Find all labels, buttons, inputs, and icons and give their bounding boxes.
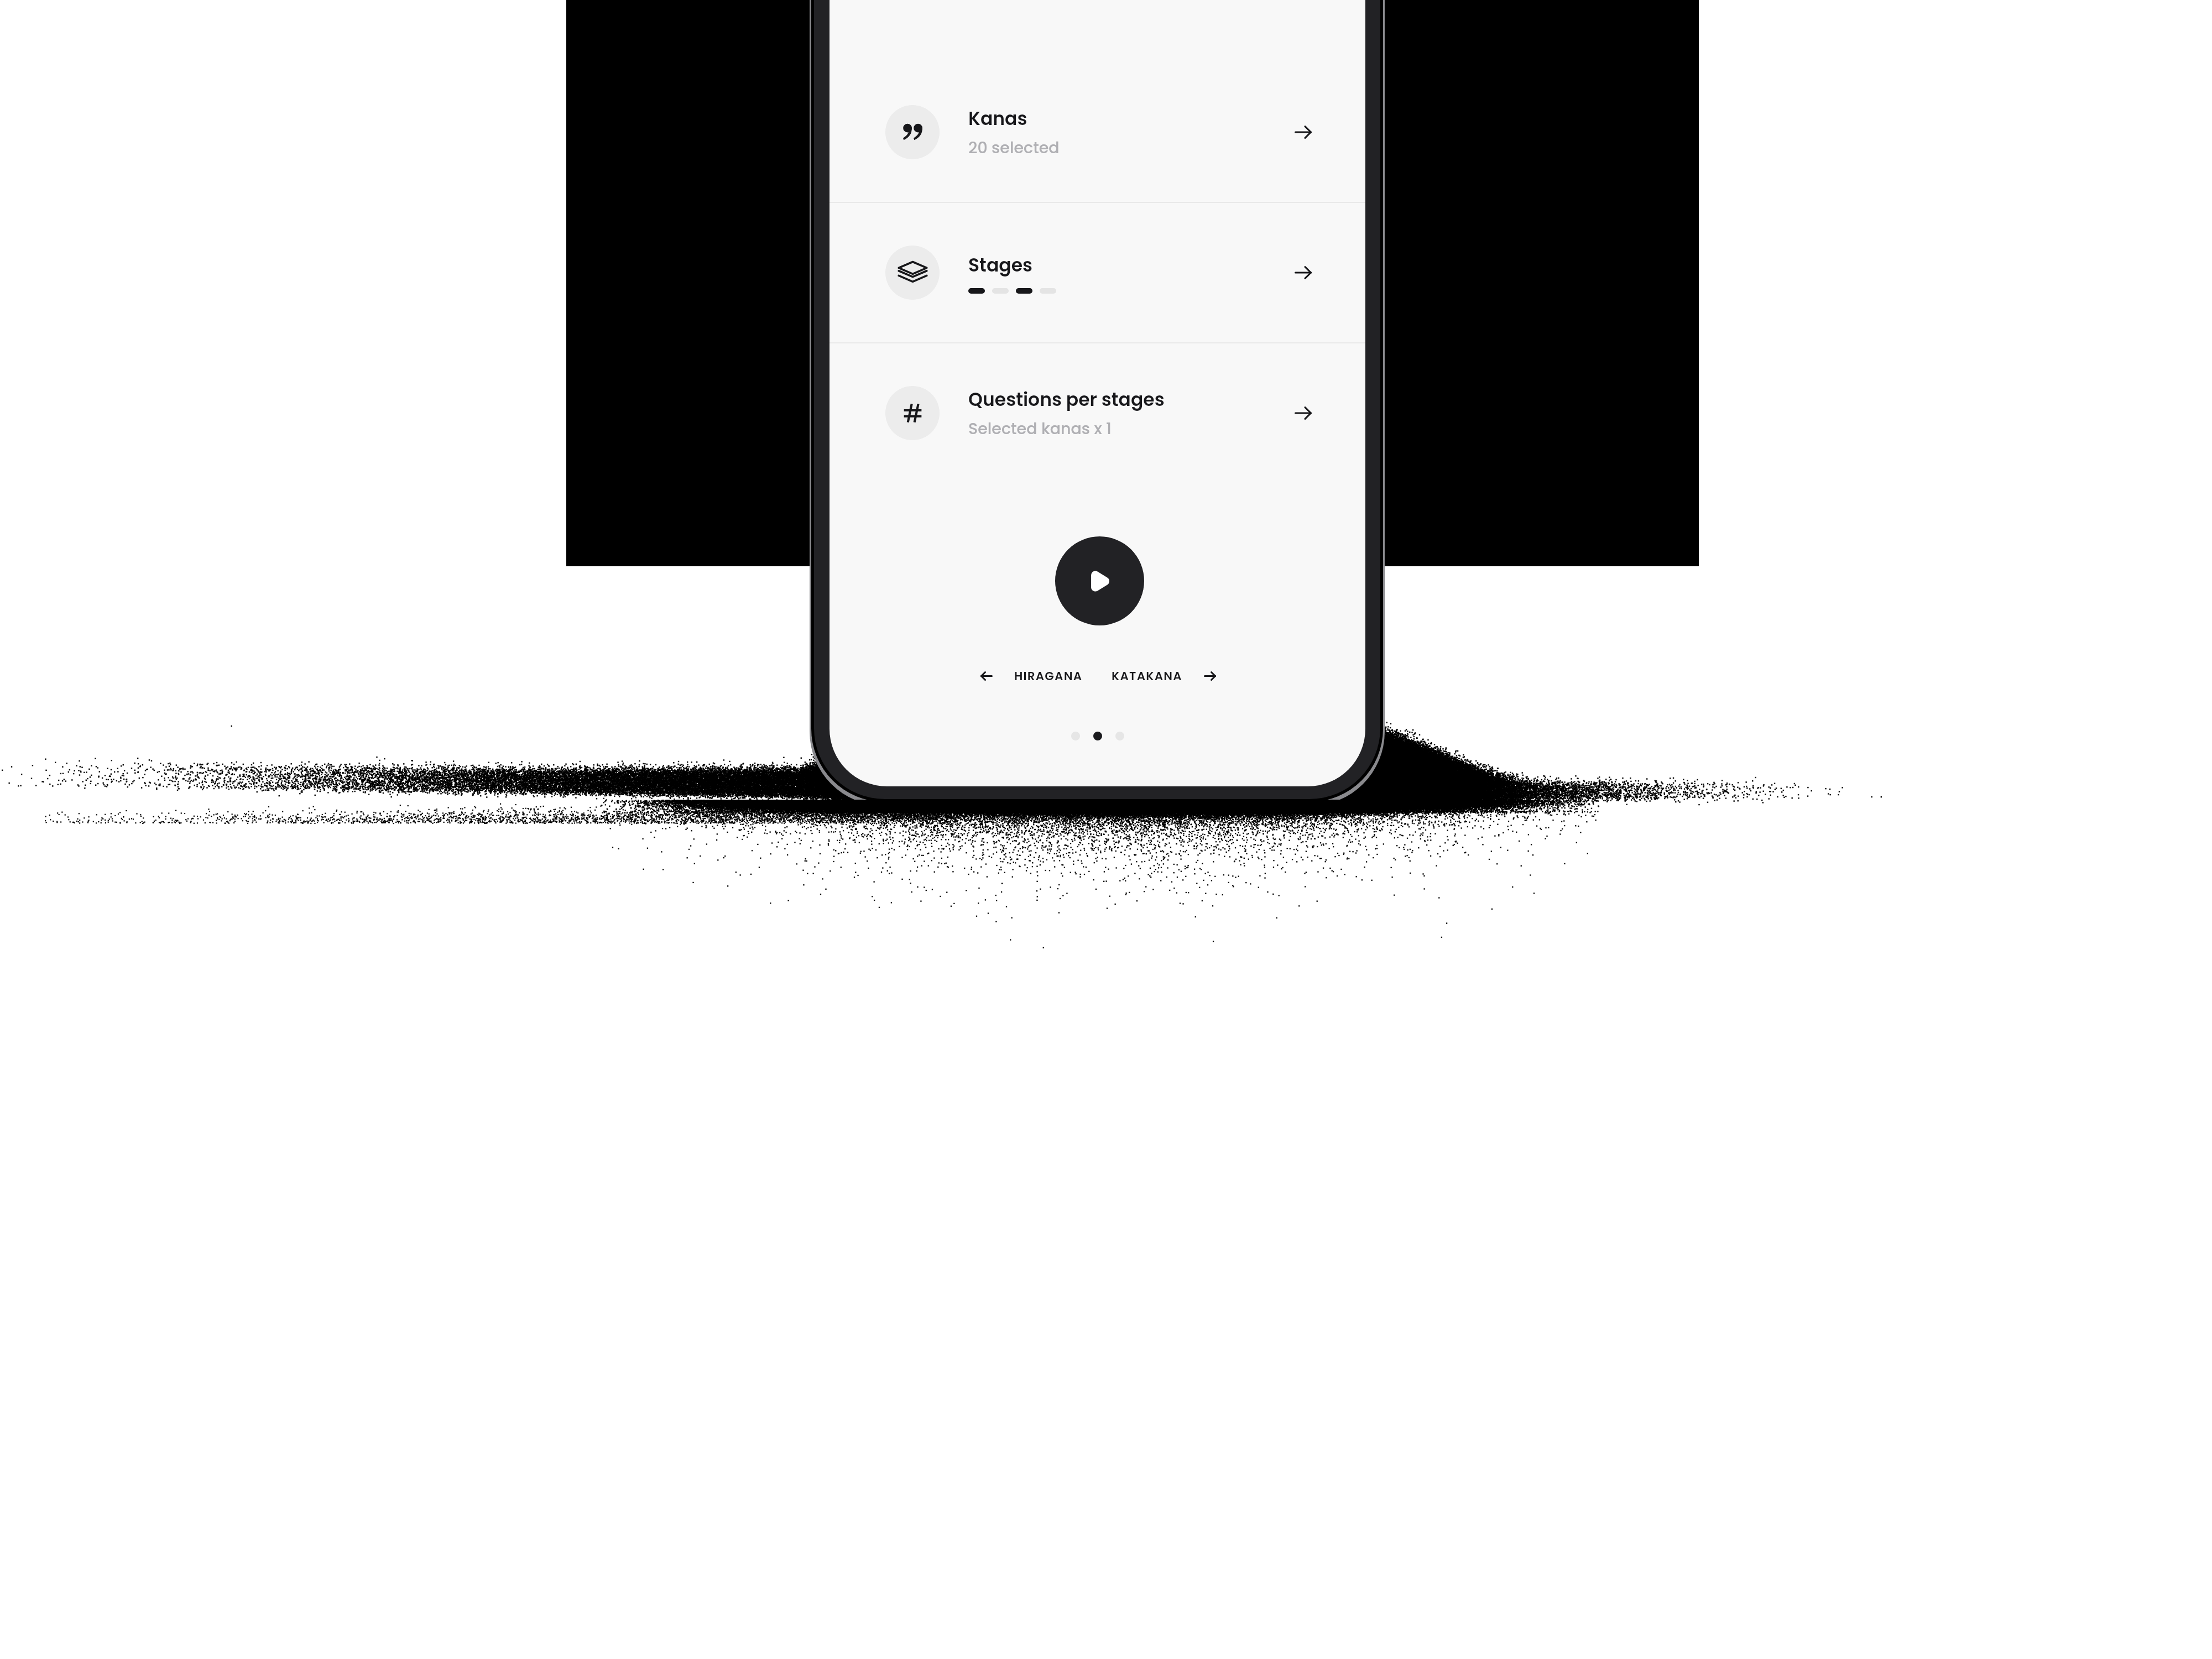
staticText: Selected kanas x 1 xyxy=(968,418,1112,440)
staticText: 20 selected xyxy=(968,137,1060,159)
button[interactable]: Next set xyxy=(1193,654,1226,698)
staticText: KATAKANA xyxy=(1112,667,1182,684)
button[interactable]: Stages xyxy=(830,203,1365,342)
button[interactable]: HIRAGANA xyxy=(1003,659,1094,693)
button[interactable]: Previous set xyxy=(969,654,1003,698)
button[interactable]: Questions per stages xyxy=(830,343,1365,483)
staticText: Kanas xyxy=(968,106,1027,131)
button[interactable]: Kanas xyxy=(830,62,1365,202)
staticText: HIRAGANA xyxy=(1014,667,1083,684)
staticText: Stages xyxy=(968,252,1032,278)
staticText: Questions per stages xyxy=(968,387,1165,412)
button[interactable]: KATAKANA xyxy=(1100,659,1193,693)
button[interactable]: Start quiz xyxy=(1055,536,1144,625)
